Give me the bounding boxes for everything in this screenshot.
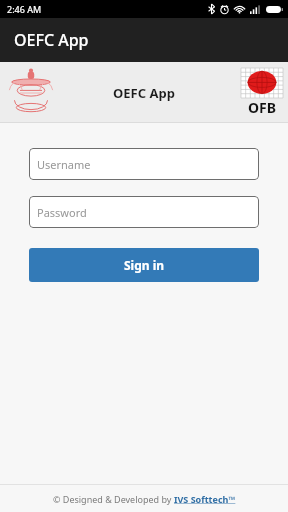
other: OFB logo bbox=[240, 68, 284, 117]
staticText: OEFC App bbox=[14, 29, 89, 51]
staticText: 2:46 AM bbox=[7, 3, 42, 15]
other: OEFC emblem bbox=[8, 67, 54, 119]
staticText: OFB bbox=[248, 98, 277, 117]
staticText: Sign in bbox=[124, 257, 165, 273]
button[interactable]: Password bbox=[29, 196, 259, 228]
staticText: © Designed & Developed by bbox=[53, 493, 174, 505]
button[interactable]: Username bbox=[29, 148, 259, 180]
button[interactable]: OEFC App bbox=[0, 18, 288, 62]
staticText: Password bbox=[37, 205, 87, 220]
staticText: OEFC App bbox=[113, 84, 175, 102]
staticText: Username bbox=[37, 157, 91, 172]
button[interactable]: Sign in bbox=[29, 248, 259, 282]
button[interactable]: IVS Softtech™ bbox=[174, 493, 236, 505]
